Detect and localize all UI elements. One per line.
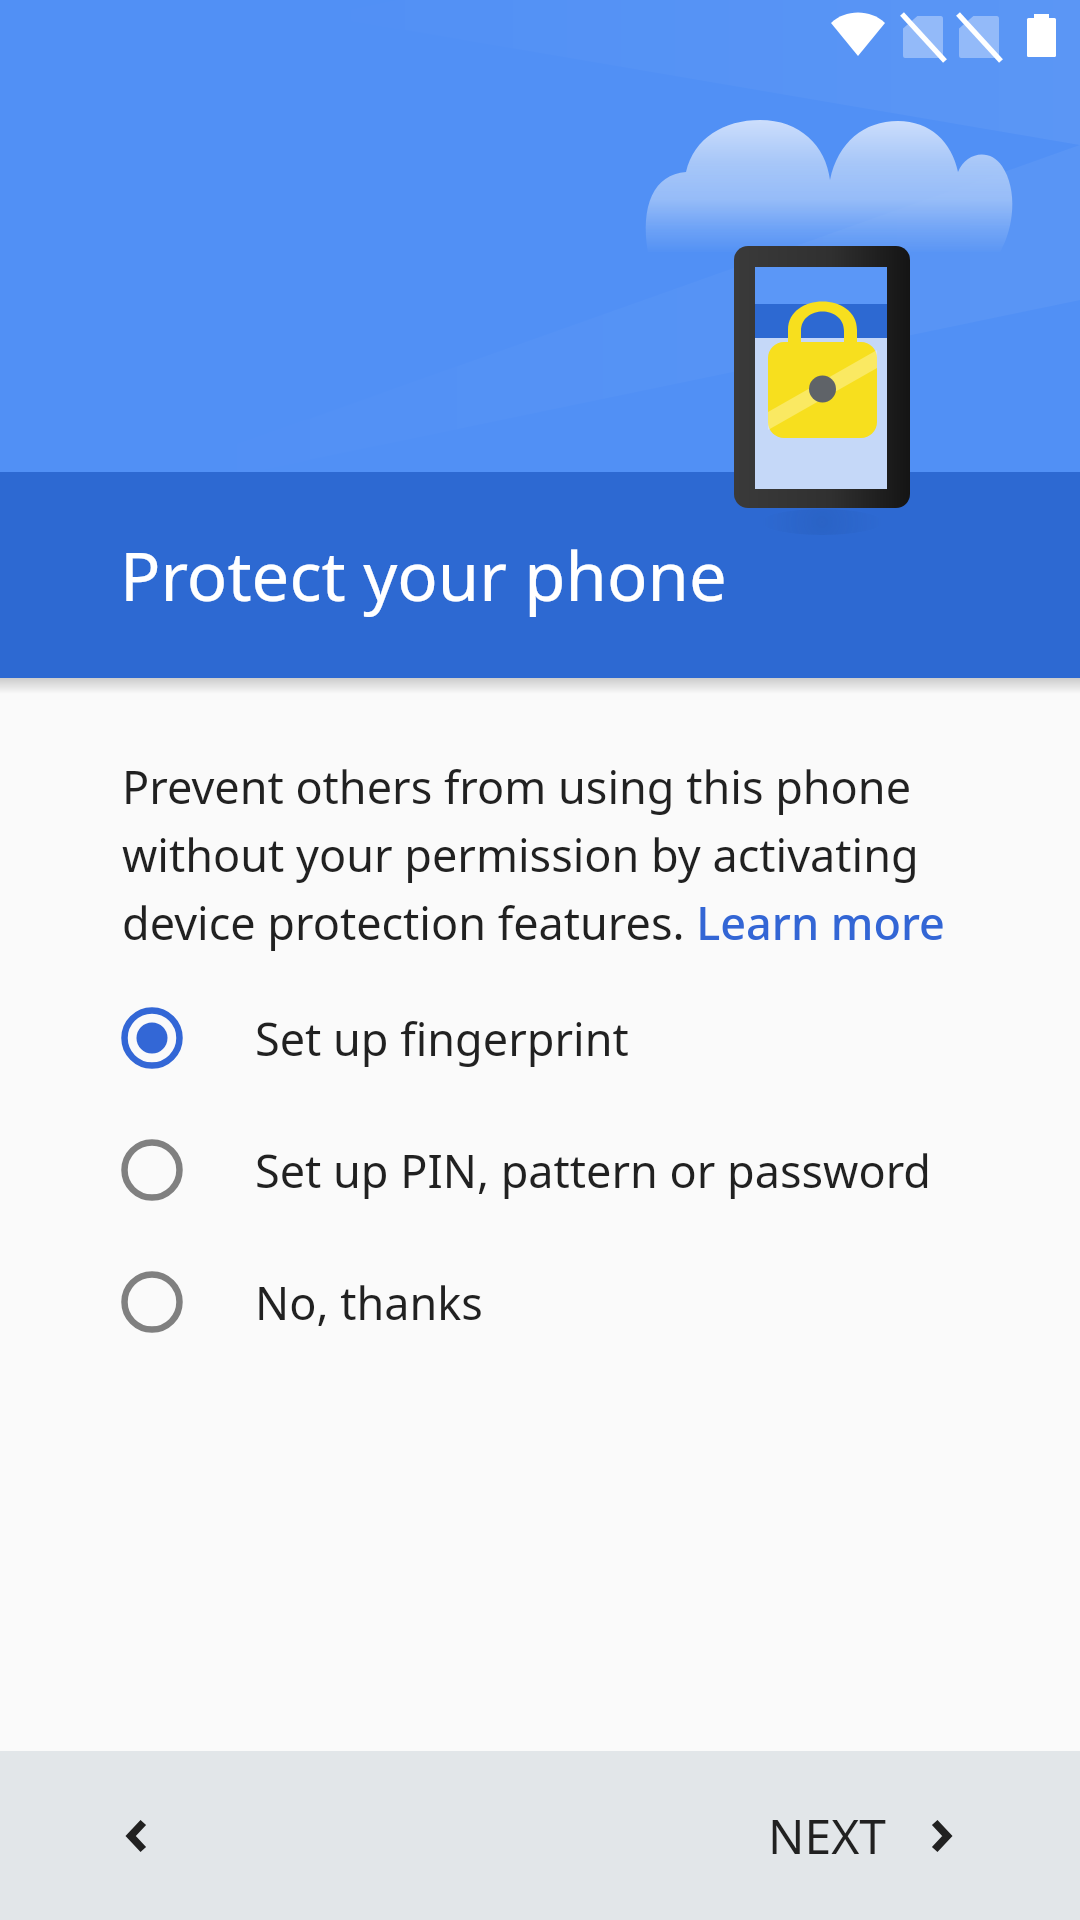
button[interactable]: No, thanks: [0, 1236, 1080, 1368]
button[interactable]: Set up PIN, pattern or password: [0, 1104, 1080, 1236]
staticText: Prevent others from using this phone wit…: [122, 756, 960, 954]
button[interactable]: Back: [95, 1794, 179, 1878]
button[interactable]: Set up fingerprint: [0, 972, 1080, 1104]
staticText: Set up PIN, pattern or password: [255, 1140, 932, 1201]
staticText: Set up fingerprint: [255, 1008, 629, 1069]
staticText: Protect your phone: [120, 529, 727, 620]
button[interactable]: NEXT: [758, 1783, 968, 1888]
staticText: No, thanks: [255, 1272, 483, 1333]
staticText: NEXT: [768, 1803, 886, 1868]
